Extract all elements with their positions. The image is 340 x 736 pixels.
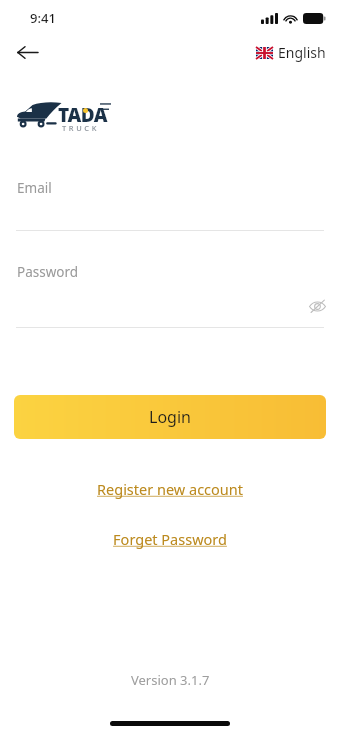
- staticText: English: [278, 43, 326, 62]
- staticText: Version 3.1.7: [131, 671, 210, 689]
- staticText: Email: [17, 179, 52, 197]
- staticText: 9:41: [30, 9, 56, 27]
- button[interactable]: Show password: [304, 293, 330, 319]
- staticText: Login: [149, 406, 191, 428]
- button[interactable]: Forget Password: [105, 525, 235, 553]
- staticText: TRUCK: [62, 123, 99, 133]
- button[interactable]: Login: [14, 395, 326, 439]
- button[interactable]: English: [254, 39, 328, 66]
- staticText: TADA: [58, 102, 108, 128]
- staticText: Register new account: [97, 479, 243, 499]
- staticText: Password: [17, 263, 79, 281]
- staticText: Forget Password: [113, 529, 227, 549]
- button[interactable]: Back: [10, 36, 44, 68]
- button[interactable]: Register new account: [89, 475, 251, 503]
